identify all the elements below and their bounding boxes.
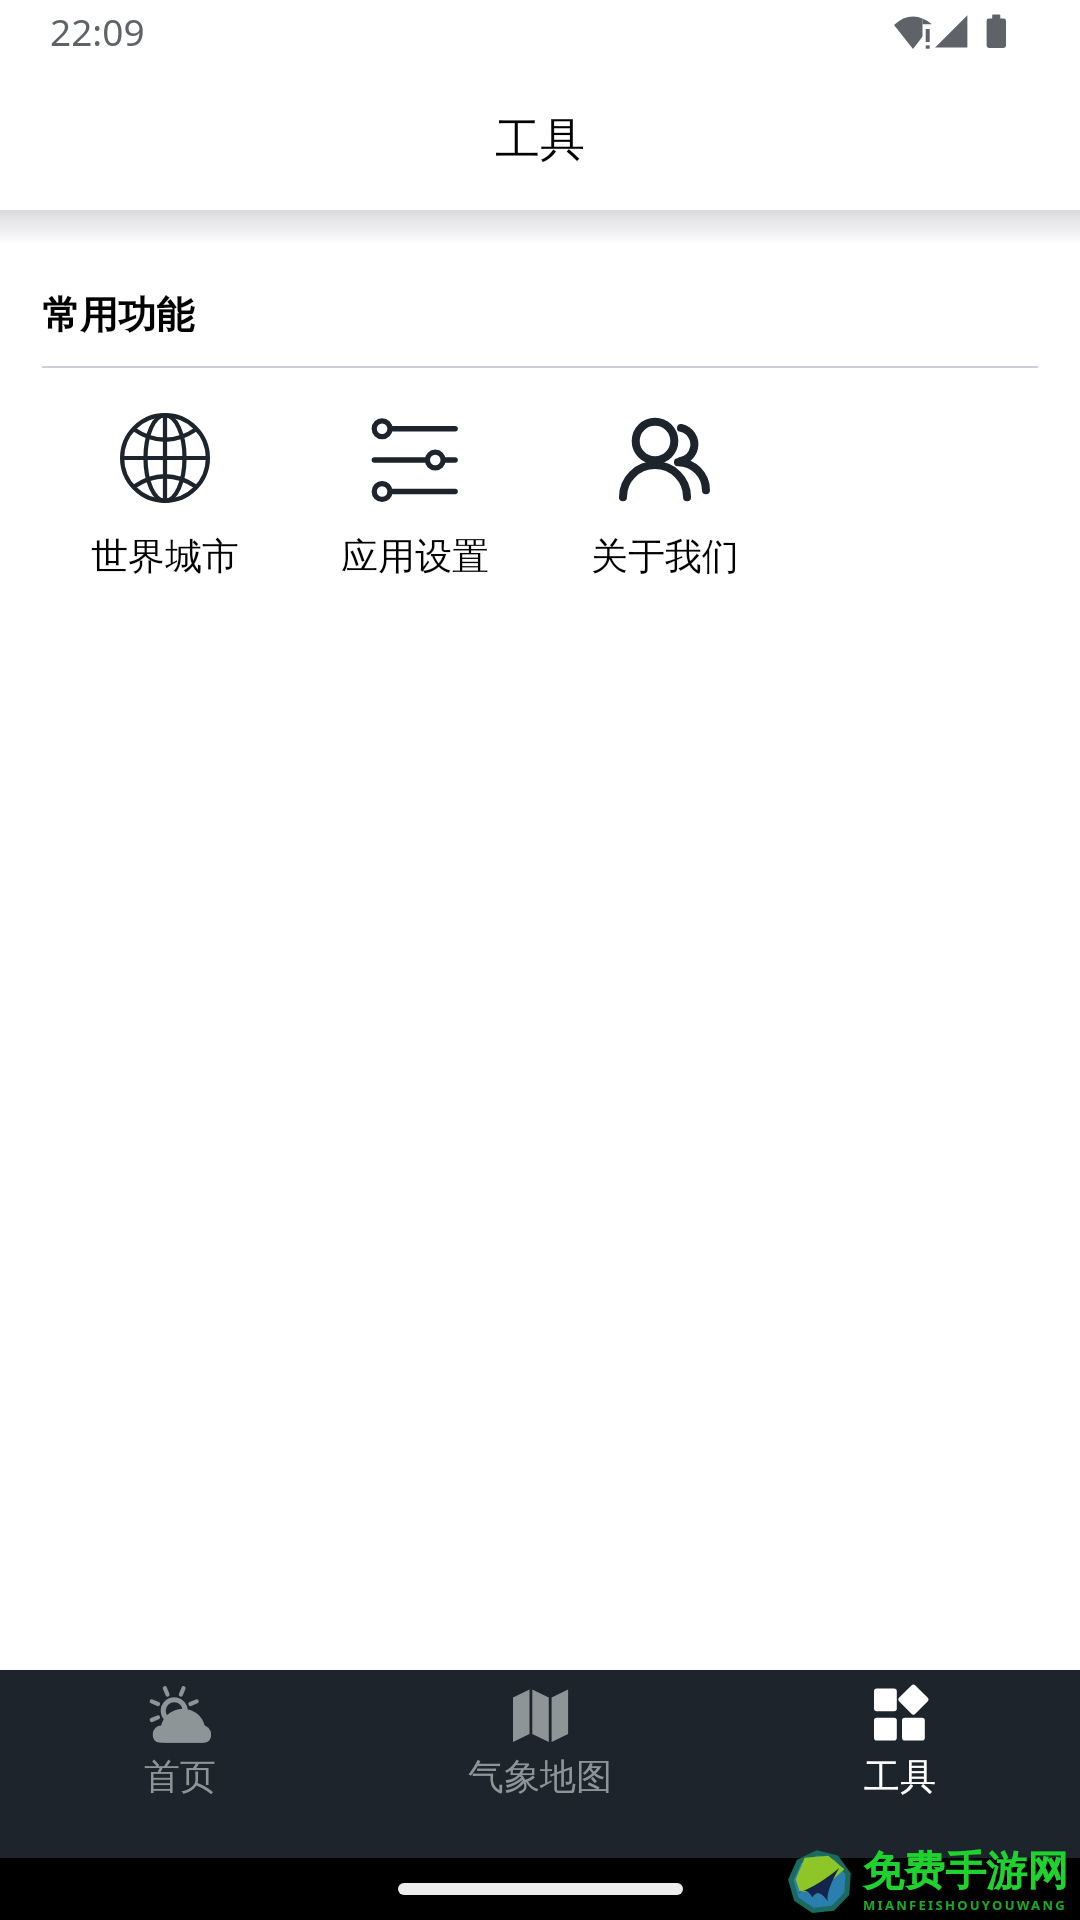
staticText: 关于我们 <box>591 533 739 580</box>
button[interactable]: 工具 <box>720 1670 1080 1858</box>
staticText: 免费手游网 <box>863 1846 1068 1898</box>
staticText: 工具 <box>495 112 585 169</box>
staticText: 首页 <box>144 1754 216 1799</box>
button[interactable]: 世界城市 <box>40 413 290 583</box>
staticText: 工具 <box>864 1754 936 1799</box>
button[interactable]: 首页 <box>0 1670 360 1858</box>
staticText: 气象地图 <box>468 1754 612 1799</box>
button[interactable]: 气象地图 <box>360 1670 720 1858</box>
button[interactable]: 应用设置 <box>290 413 540 583</box>
staticText: MIANFEISHOUYOUWANG <box>863 1896 1067 1914</box>
button[interactable]: 关于我们 <box>540 413 790 583</box>
staticText: 22:09 <box>50 6 145 56</box>
staticText: 应用设置 <box>341 533 489 580</box>
staticText: 世界城市 <box>91 533 239 580</box>
staticText: 常用功能 <box>42 291 194 339</box>
